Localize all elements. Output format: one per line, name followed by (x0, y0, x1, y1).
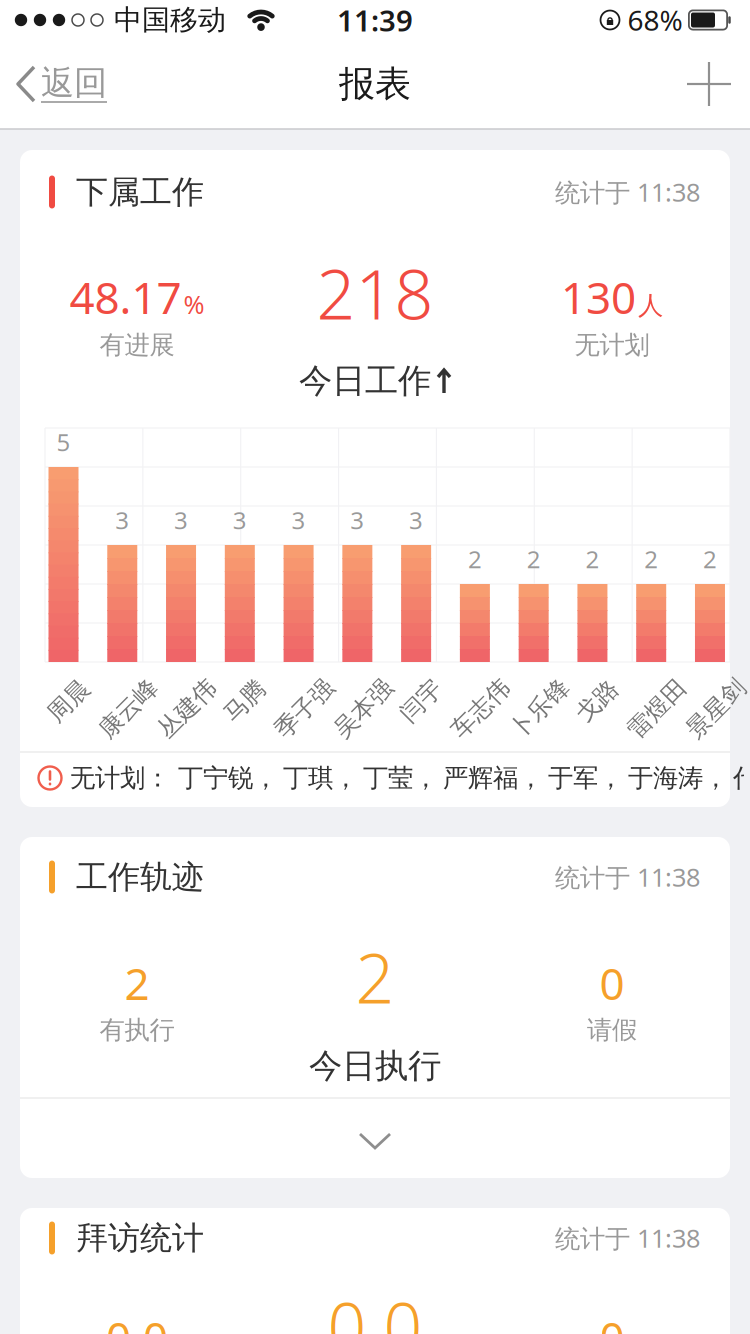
staticText: 马腾 (221, 686, 269, 716)
staticText: 周晨 (44, 686, 92, 716)
staticText: 5 (56, 426, 70, 458)
staticText: 11:39 (337, 0, 413, 39)
staticText: 统计于 11:38 (555, 1221, 700, 1255)
staticText: 0 (599, 954, 624, 1012)
staticText: 218 (316, 248, 433, 338)
staticText: 返回 (41, 62, 107, 103)
staticText: 无计划： 丁宁锐， 丁琪， 丁莹， 严辉福， 于军， 于海涛， 代超 (70, 762, 750, 793)
staticText: 下属工作 (76, 172, 204, 212)
button[interactable] (20, 1113, 730, 1169)
staticText: 2 (585, 543, 599, 575)
staticText: 请假 (587, 1014, 637, 1045)
staticText: 季子强 (269, 694, 341, 723)
staticText: 2 (703, 543, 717, 575)
staticText: 有执行 (99, 1014, 174, 1045)
staticText: 3 (115, 504, 129, 536)
staticText: 3 (292, 504, 306, 536)
staticText: 康云峰 (92, 694, 164, 723)
staticText: 2 (124, 954, 149, 1012)
staticText: 丛建伟 (151, 694, 223, 723)
staticText: 2 (527, 543, 541, 575)
staticText: 2 (644, 543, 658, 575)
staticText: 统计于 11:38 (555, 860, 700, 894)
button[interactable]: 返回 (0, 40, 120, 128)
staticText: % (183, 287, 204, 321)
staticText: 戈路 (573, 686, 621, 716)
staticText: 今日工作 (299, 360, 431, 401)
staticText: 2 (468, 543, 482, 575)
staticText: 中国移动 (114, 3, 226, 37)
staticText: 3 (409, 504, 423, 536)
staticText: 工作轨迹 (76, 857, 204, 897)
staticText: 车志伟 (445, 694, 517, 723)
staticText: 48.17 (69, 268, 181, 326)
staticText: 今日执行 (309, 1045, 441, 1086)
staticText: 雷煜田 (621, 694, 693, 723)
staticText: 130 (561, 268, 636, 326)
staticText: 拜访统计 (76, 1218, 204, 1258)
staticText: 3 (233, 504, 247, 536)
staticText: 0 (599, 1308, 624, 1334)
staticText: 无计划 (574, 329, 649, 360)
staticText: 统计于 11:38 (555, 175, 700, 209)
staticText: 报表 (339, 62, 411, 106)
staticText: 68% (627, 1, 682, 39)
staticText: 3 (350, 504, 364, 536)
staticText: 卜乐锋 (504, 694, 576, 723)
button[interactable] (679, 54, 739, 114)
staticText: 3 (174, 504, 188, 536)
staticText: 2 (355, 932, 394, 1022)
staticText: 有进展 (99, 329, 174, 360)
staticText: 景星剑 (680, 694, 750, 723)
staticText: 吴本强 (327, 694, 399, 723)
staticText: 闫宇 (397, 686, 445, 716)
staticText: 人 (638, 290, 663, 321)
staticText: 0.0 (327, 1281, 422, 1334)
staticText: 0.0 (106, 1308, 168, 1334)
